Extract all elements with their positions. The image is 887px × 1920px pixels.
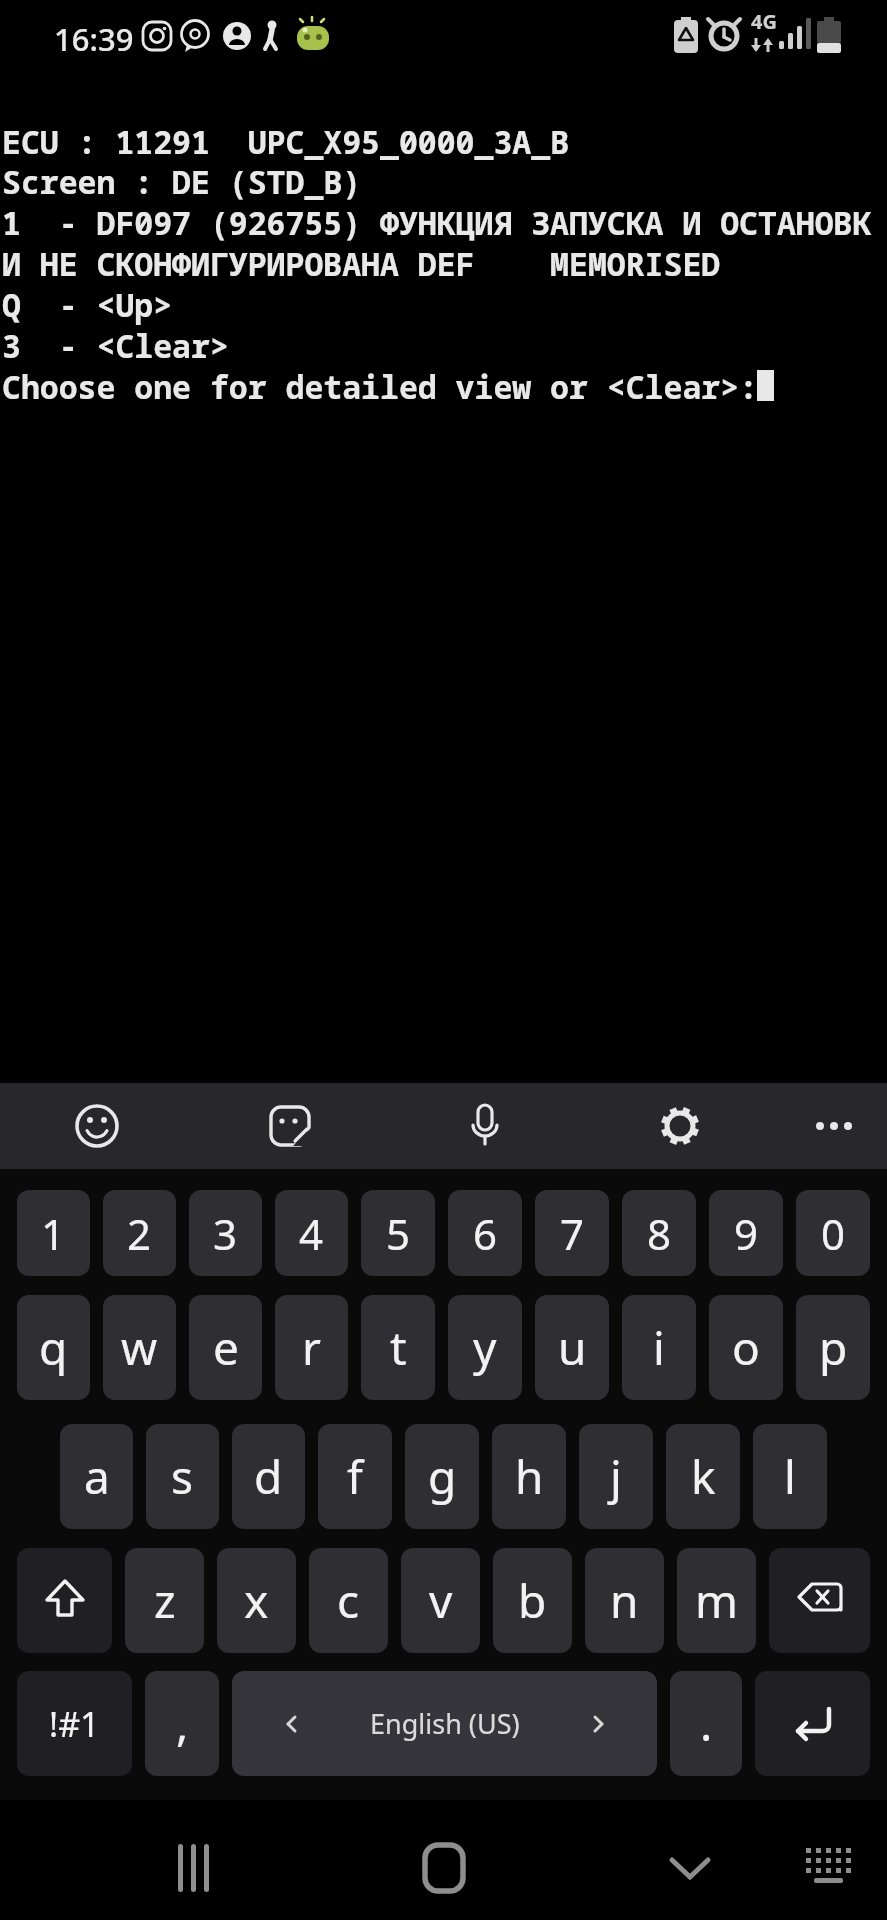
staticText: v — [429, 1569, 453, 1632]
staticText: , — [176, 1692, 189, 1755]
staticText: j — [610, 1445, 622, 1508]
staticText: 3 - <Clear> — [2, 324, 229, 367]
staticText: k — [691, 1445, 716, 1508]
button[interactable]: 5 — [361, 1190, 435, 1276]
button[interactable]: s — [146, 1424, 219, 1529]
button[interactable]: x — [217, 1548, 296, 1653]
staticText: f — [347, 1445, 363, 1508]
button[interactable]: i — [622, 1295, 696, 1400]
staticText: И НЕ СКОНФИГУРИРОВАНА DEF MEMORISED — [2, 242, 721, 285]
button[interactable]: w — [103, 1295, 176, 1400]
staticText: Q - <Up> — [2, 283, 173, 326]
staticText: 7 — [560, 1205, 585, 1262]
staticText: English (US) — [370, 1705, 520, 1742]
staticText: 0 — [821, 1205, 846, 1262]
button[interactable]: r — [275, 1295, 348, 1400]
staticText: t — [390, 1316, 407, 1379]
button[interactable]: b — [493, 1548, 572, 1653]
button[interactable]: h — [492, 1424, 566, 1529]
staticText: 3 — [213, 1205, 238, 1262]
button[interactable]: m — [677, 1548, 756, 1653]
button[interactable]: f — [318, 1424, 392, 1529]
button[interactable]: a — [60, 1424, 133, 1529]
staticText: 5 — [386, 1205, 411, 1262]
button[interactable] — [769, 1548, 870, 1653]
staticText: 4 — [299, 1205, 324, 1262]
button[interactable]: , — [145, 1671, 219, 1776]
button[interactable]: q — [17, 1295, 90, 1400]
button[interactable]: 9 — [709, 1190, 783, 1276]
staticText: l — [784, 1445, 796, 1508]
button[interactable] — [755, 1671, 870, 1776]
button[interactable]: t — [361, 1295, 435, 1400]
button[interactable]: 8 — [622, 1190, 696, 1276]
staticText: . — [700, 1692, 713, 1755]
staticText: 2 — [127, 1205, 152, 1262]
staticText: z — [154, 1569, 176, 1632]
button[interactable]: c — [309, 1548, 388, 1653]
staticText: 8 — [647, 1205, 672, 1262]
button[interactable]: !#1 — [17, 1671, 132, 1776]
button[interactable] — [295, 1800, 591, 1920]
button[interactable]: . — [670, 1671, 742, 1776]
staticText: r — [302, 1316, 321, 1379]
staticText: g — [428, 1445, 457, 1508]
staticText: !#1 — [49, 1701, 100, 1747]
staticText: u — [558, 1316, 587, 1379]
staticText: x — [244, 1569, 269, 1632]
staticText: Choose one for detailed view or <Clear>: — [2, 365, 759, 408]
staticText: e — [213, 1316, 239, 1379]
button[interactable]: y — [448, 1295, 522, 1400]
staticText: c — [337, 1569, 360, 1632]
button[interactable]: n — [585, 1548, 664, 1653]
button[interactable]: v — [401, 1548, 480, 1653]
button[interactable]: k — [666, 1424, 740, 1529]
button[interactable]: p — [796, 1295, 870, 1400]
staticText: 1 - DF097 (926755) ФУНКЦИЯ ЗАПУСКА И ОСТ… — [2, 201, 872, 244]
button[interactable] — [0, 1800, 295, 1920]
button[interactable]: English (US) — [232, 1671, 657, 1776]
staticText: 16:39 — [54, 18, 134, 60]
staticText: 4G — [751, 8, 777, 35]
button[interactable]: 0 — [796, 1190, 870, 1276]
button[interactable] — [17, 1548, 112, 1653]
staticText: ECU : 11291 UPC_X95_0000_3A_B — [2, 120, 570, 163]
button[interactable]: l — [753, 1424, 827, 1529]
button[interactable]: 4 — [275, 1190, 348, 1276]
staticText: b — [518, 1569, 547, 1632]
staticText: d — [254, 1445, 283, 1508]
button[interactable]: 6 — [448, 1190, 522, 1276]
staticText: w — [121, 1316, 158, 1379]
button[interactable]: g — [405, 1424, 479, 1529]
button[interactable]: j — [579, 1424, 653, 1529]
staticText: Screen : DE (STD_B) — [2, 160, 362, 203]
staticText: 9 — [734, 1205, 759, 1262]
staticText: 6 — [473, 1205, 498, 1262]
button[interactable]: e — [189, 1295, 262, 1400]
staticText: q — [39, 1316, 68, 1379]
button[interactable] — [591, 1800, 887, 1920]
button[interactable]: 2 — [103, 1190, 176, 1276]
button[interactable]: u — [535, 1295, 609, 1400]
button[interactable]: 1 — [17, 1190, 90, 1276]
button[interactable]: d — [232, 1424, 305, 1529]
staticText: p — [819, 1316, 848, 1379]
button[interactable]: 7 — [535, 1190, 609, 1276]
staticText: m — [695, 1569, 739, 1632]
staticText: n — [610, 1569, 639, 1632]
staticText: o — [732, 1316, 760, 1379]
button[interactable]: z — [125, 1548, 204, 1653]
button[interactable]: o — [709, 1295, 783, 1400]
staticText: i — [653, 1316, 665, 1379]
staticText: a — [84, 1445, 110, 1508]
staticText: s — [171, 1445, 194, 1508]
button[interactable]: 3 — [189, 1190, 262, 1276]
staticText: y — [473, 1316, 497, 1379]
staticText: h — [515, 1445, 544, 1508]
staticText: 1 — [41, 1205, 66, 1262]
